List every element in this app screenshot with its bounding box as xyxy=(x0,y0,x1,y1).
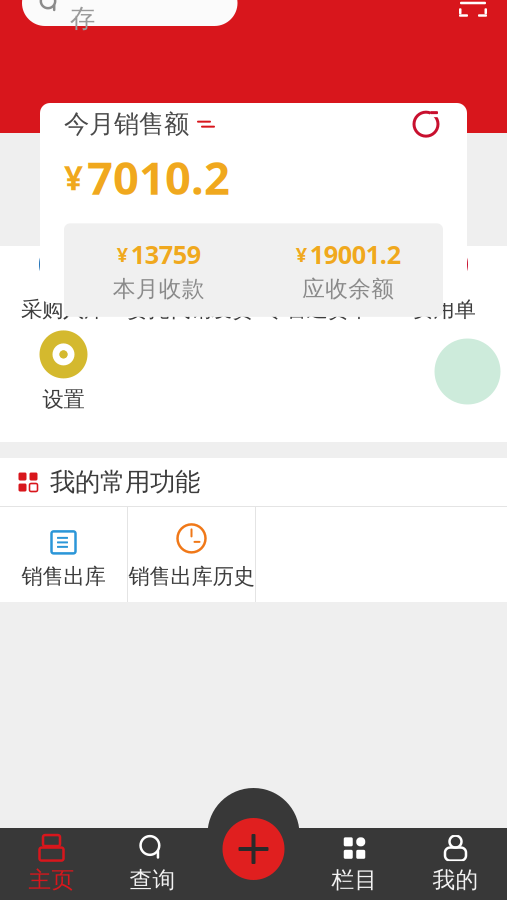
button[interactable]: 扫一扫 xyxy=(453,0,493,26)
staticText: ¥ xyxy=(117,241,128,267)
staticText: 费用单 xyxy=(412,296,475,323)
staticText: 本月收款 xyxy=(113,275,205,303)
button[interactable]: 新建 xyxy=(218,814,288,884)
staticText: 主页 xyxy=(28,866,74,894)
staticText: ¥ xyxy=(435,243,453,286)
staticText: 今月销售额 xyxy=(64,109,189,140)
staticText: 我的 xyxy=(432,866,478,894)
staticText: ¥ xyxy=(64,155,83,199)
staticText: 委托代销发货 xyxy=(127,296,253,323)
button[interactable]: 销售出库历史 xyxy=(128,507,255,602)
staticText: 7010.2 xyxy=(87,147,230,207)
staticText: 零售退货单 xyxy=(264,296,369,323)
staticText: 应收余额 xyxy=(302,275,394,303)
button[interactable]: 我的 xyxy=(405,828,506,900)
staticText: 13759 xyxy=(131,237,201,271)
staticText: 销售出库 xyxy=(21,563,105,590)
staticText: 查询产品库存 xyxy=(70,0,195,34)
button[interactable]: 零售退货单 xyxy=(253,239,380,323)
button[interactable]: 销售出库 xyxy=(0,507,127,602)
button[interactable]: ¥ xyxy=(380,239,507,323)
staticText: 查询 xyxy=(129,866,175,894)
staticText: 19001.2 xyxy=(310,237,401,271)
button[interactable]: 栏目 xyxy=(304,828,405,900)
button[interactable]: 设置 xyxy=(0,329,127,413)
button[interactable]: 查询 xyxy=(102,828,203,900)
staticText: 设置 xyxy=(42,386,84,413)
button[interactable]: 刷新 xyxy=(409,107,443,141)
staticText: ¥ xyxy=(296,241,307,267)
staticText: 栏目 xyxy=(331,866,377,894)
staticText: 我的常用功能 xyxy=(50,466,200,497)
staticText: 销售出库历史 xyxy=(128,563,254,590)
button[interactable]: 委托代销发货 xyxy=(126,239,253,323)
staticText: 采购入库 xyxy=(21,296,105,323)
button[interactable]: 采购入库 xyxy=(0,239,126,323)
button[interactable]: 主页 xyxy=(1,828,102,900)
button[interactable]: 查询产品库存 xyxy=(22,0,237,26)
